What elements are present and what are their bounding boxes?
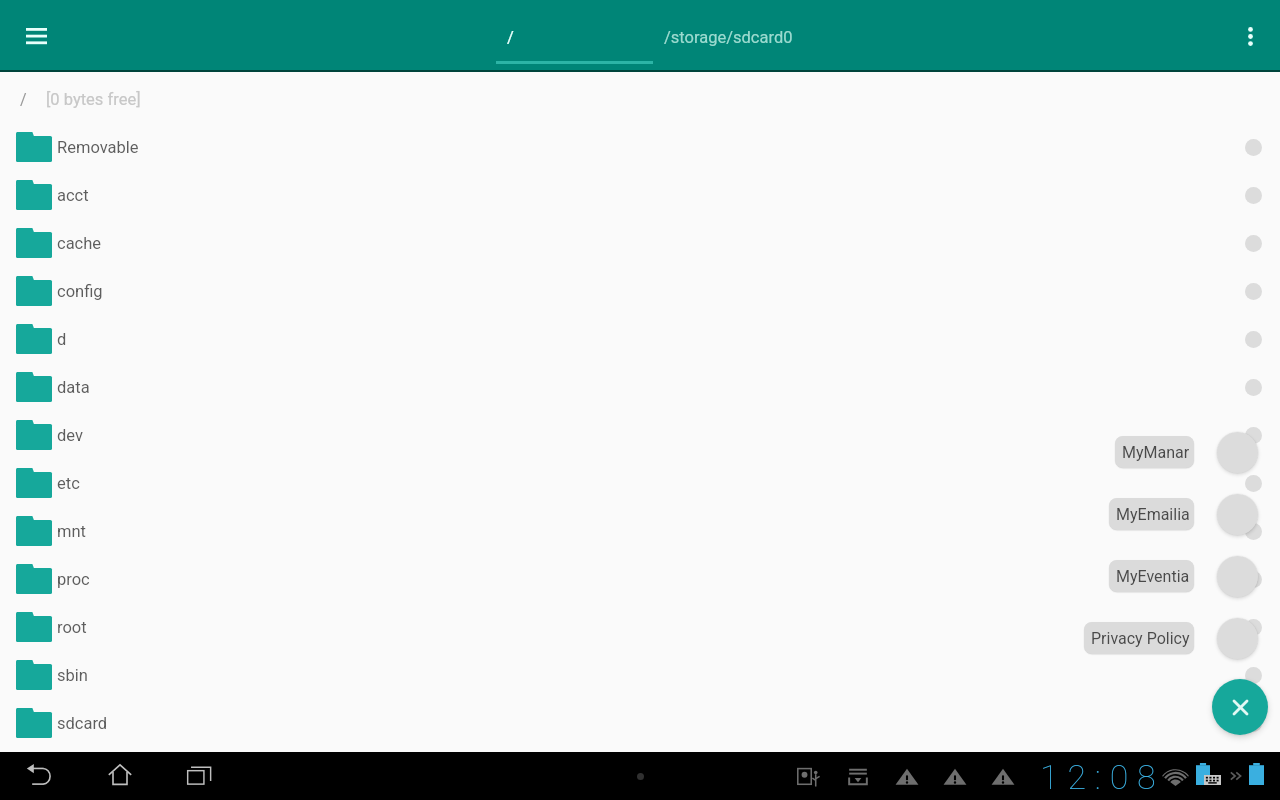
staticText: 12:08 [1040, 757, 1165, 797]
button[interactable]: /storage/sdcard0 [653, 0, 813, 72]
button[interactable]: Open navigation drawer [12, 12, 60, 60]
staticText: d [57, 330, 67, 349]
button[interactable]: Select sbin [1231, 653, 1275, 697]
button[interactable]: Select acct [1231, 173, 1275, 217]
button[interactable]: MyManar [1115, 436, 1194, 468]
staticText: MyEmailia [1116, 505, 1190, 524]
staticText: Privacy Policy [1091, 629, 1190, 648]
staticText: Removable [57, 138, 139, 157]
staticText: [0 bytes free] [46, 90, 141, 109]
button[interactable]: root [0, 603, 1280, 651]
staticText: data [57, 378, 90, 397]
button[interactable]: Close menu [1212, 679, 1268, 735]
staticText: MyManar [1122, 443, 1190, 462]
button[interactable]: sdcard [0, 699, 1280, 747]
button[interactable]: mnt [0, 507, 1280, 555]
staticText: mnt [57, 522, 86, 541]
button[interactable]: config [0, 267, 1280, 315]
button[interactable]: Select cache [1231, 221, 1275, 265]
button[interactable]: Recents [160, 752, 240, 800]
button[interactable]: acct [0, 171, 1280, 219]
staticText: /storage/sdcard0 [664, 28, 793, 47]
staticText: sdcard [57, 714, 108, 733]
button[interactable]: Select data [1231, 365, 1275, 409]
button[interactable]: data [0, 363, 1280, 411]
button[interactable]: MyManar [1217, 432, 1258, 473]
button[interactable]: Privacy Policy [1217, 618, 1258, 659]
button[interactable]: cache [0, 219, 1280, 267]
staticText: / [507, 28, 514, 47]
button[interactable]: sbin [0, 651, 1280, 699]
button[interactable]: Select Removable [1231, 125, 1275, 169]
button[interactable]: MyEventia [1217, 556, 1258, 597]
button[interactable]: Select proc [1231, 557, 1275, 601]
button[interactable]: d [0, 315, 1280, 363]
button[interactable]: MyEventia [1109, 560, 1194, 592]
button[interactable]: / [496, 0, 653, 72]
button[interactable]: Select d [1231, 317, 1275, 361]
button[interactable]: proc [0, 555, 1280, 603]
button[interactable]: Select etc [1231, 461, 1275, 505]
button[interactable]: Select mnt [1231, 509, 1275, 553]
button[interactable]: Select dev [1231, 413, 1275, 457]
button[interactable]: More options [1226, 12, 1274, 60]
staticText: config [57, 282, 103, 301]
button[interactable]: Privacy Policy [1084, 622, 1194, 654]
staticText: acct [57, 186, 89, 205]
button[interactable]: MyEmailia [1109, 498, 1194, 530]
button[interactable]: Select config [1231, 269, 1275, 313]
staticText: cache [57, 234, 102, 253]
button[interactable]: Select sdcard [1231, 701, 1275, 745]
staticText: MyEventia [1116, 567, 1190, 586]
staticText: dev [57, 426, 83, 445]
button[interactable]: MyEmailia [1217, 494, 1258, 535]
button[interactable]: etc [0, 459, 1280, 507]
staticText: sbin [57, 666, 88, 685]
button[interactable]: Home [80, 752, 160, 800]
staticText: / [20, 90, 27, 109]
button[interactable]: Back [0, 752, 80, 800]
staticText: root [57, 618, 87, 637]
staticText: proc [57, 570, 90, 589]
button[interactable]: dev [0, 411, 1280, 459]
staticText: etc [57, 474, 80, 493]
button[interactable]: Removable [0, 123, 1280, 171]
button[interactable]: Select root [1231, 605, 1275, 649]
